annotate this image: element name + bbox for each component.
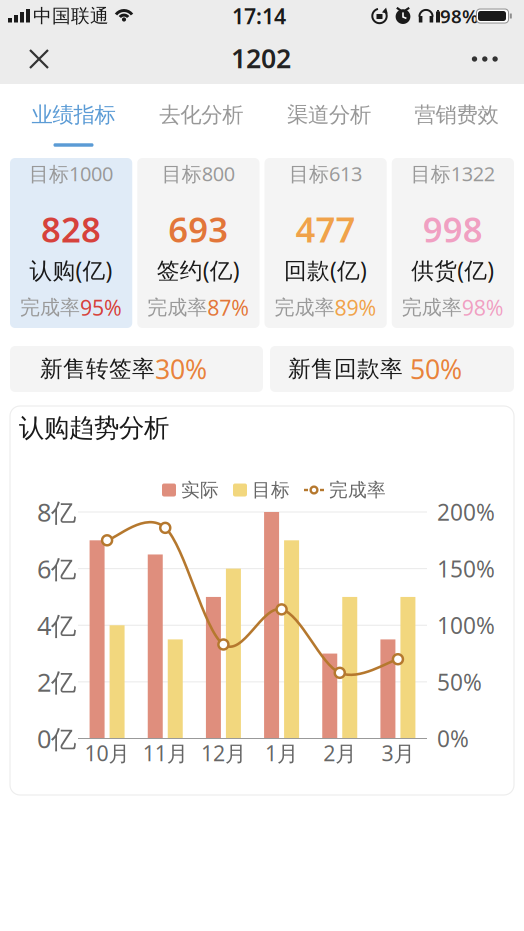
staticText: 98% bbox=[462, 293, 504, 322]
staticText: 去化分析 bbox=[159, 102, 243, 128]
button[interactable]: 渠道分析 bbox=[265, 84, 393, 150]
staticText: 12月 bbox=[201, 739, 246, 767]
staticText: 828 bbox=[41, 206, 101, 252]
staticText: 150% bbox=[437, 554, 495, 584]
button[interactable]: 目标1000 bbox=[10, 158, 132, 328]
staticText: 目标 bbox=[252, 478, 290, 501]
staticText: 693 bbox=[168, 206, 228, 252]
button[interactable]: 营销费效 bbox=[393, 84, 520, 150]
staticText: 完成率 bbox=[329, 478, 386, 501]
button[interactable]: More bbox=[461, 46, 508, 72]
staticText: 30% bbox=[155, 351, 207, 387]
staticText: 业绩指标 bbox=[31, 102, 115, 128]
staticText: 2亿 bbox=[37, 665, 76, 699]
staticText: 目标1322 bbox=[411, 160, 495, 187]
staticText: 998 bbox=[423, 206, 483, 252]
staticText: 完成率 bbox=[402, 295, 462, 320]
button[interactable]: 新售回款率 bbox=[270, 346, 514, 392]
staticText: 200% bbox=[437, 497, 495, 527]
staticText: 认购趋势分析 bbox=[19, 412, 169, 443]
staticText: 477 bbox=[296, 206, 356, 252]
staticText: 中国联通 bbox=[33, 4, 109, 27]
staticText: 6亿 bbox=[37, 552, 76, 585]
staticText: 完成率 bbox=[275, 295, 335, 320]
staticText: 0亿 bbox=[37, 722, 76, 755]
button[interactable]: 业绩指标 bbox=[10, 84, 137, 150]
staticText: 98% bbox=[440, 4, 478, 28]
staticText: 3月 bbox=[381, 739, 414, 767]
button[interactable]: 目标800 bbox=[137, 158, 259, 328]
staticText: 87% bbox=[207, 293, 249, 322]
staticText: 新售回款率 bbox=[288, 355, 410, 383]
staticText: 2月 bbox=[323, 739, 356, 767]
button[interactable]: 目标1322 bbox=[392, 158, 514, 328]
button[interactable]: Close bbox=[18, 38, 60, 80]
staticText: 4亿 bbox=[37, 608, 76, 642]
staticText: 认购(亿) bbox=[30, 255, 113, 285]
staticText: 新售转签率 bbox=[40, 355, 155, 383]
staticText: 11月 bbox=[143, 739, 188, 767]
staticText: 目标613 bbox=[289, 160, 362, 187]
staticText: 1202 bbox=[231, 40, 291, 76]
staticText: 1月 bbox=[265, 739, 298, 767]
staticText: 50% bbox=[437, 667, 482, 697]
staticText: 回款(亿) bbox=[284, 255, 367, 285]
staticText: 50% bbox=[410, 351, 462, 387]
staticText: 目标800 bbox=[162, 160, 235, 187]
staticText: 实际 bbox=[181, 478, 219, 501]
staticText: 渠道分析 bbox=[287, 102, 371, 128]
staticText: 8亿 bbox=[37, 495, 76, 529]
staticText: 供货(亿) bbox=[411, 255, 494, 285]
staticText: 100% bbox=[437, 610, 495, 640]
button[interactable]: 目标613 bbox=[264, 158, 387, 328]
staticText: 89% bbox=[335, 293, 377, 322]
staticText: 营销费效 bbox=[415, 102, 499, 128]
button[interactable]: 去化分析 bbox=[137, 84, 265, 150]
staticText: 完成率 bbox=[147, 295, 207, 320]
staticText: 目标1000 bbox=[29, 160, 113, 187]
staticText: 签约(亿) bbox=[157, 255, 240, 285]
staticText: 17:14 bbox=[232, 2, 286, 30]
staticText: 完成率 bbox=[20, 295, 80, 320]
button[interactable]: 新售转签率 bbox=[10, 346, 263, 392]
staticText: 0% bbox=[437, 723, 469, 753]
staticText: 95% bbox=[80, 293, 122, 322]
staticText: 10月 bbox=[85, 739, 130, 767]
